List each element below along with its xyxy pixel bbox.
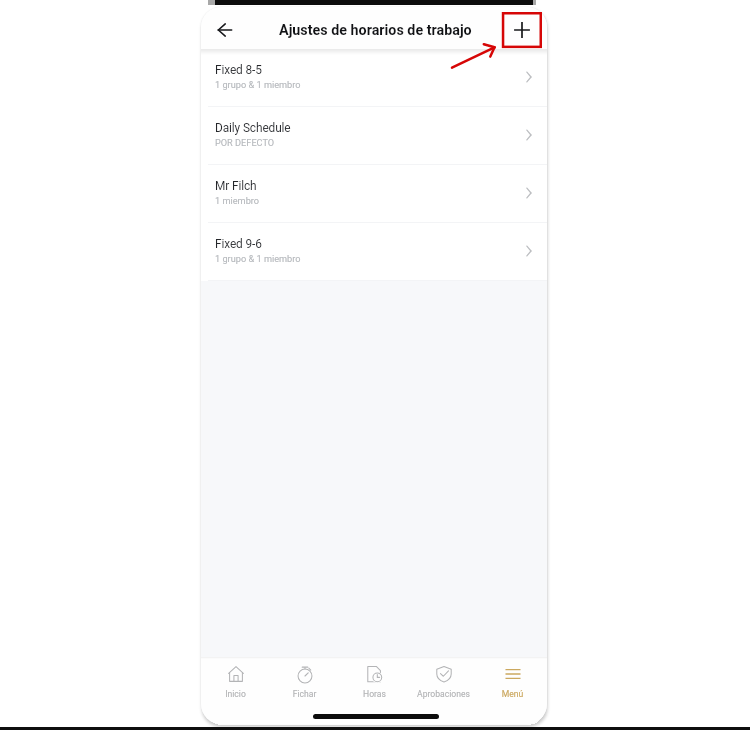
button[interactable]: Daily Schedule bbox=[201, 107, 547, 165]
staticText: 1 miembro bbox=[215, 195, 260, 206]
button[interactable]: Fixed 8-5 bbox=[201, 49, 547, 107]
button[interactable]: Mr Filch bbox=[201, 165, 547, 223]
staticText: 1 grupo & 1 miembro bbox=[215, 253, 301, 264]
staticText: Inicio bbox=[201, 689, 270, 699]
button[interactable]: Horas bbox=[340, 659, 409, 699]
staticText: Fichar bbox=[270, 689, 339, 699]
staticText: 1 grupo & 1 miembro bbox=[215, 79, 301, 90]
button[interactable]: Back bbox=[207, 12, 243, 48]
button[interactable]: Inicio bbox=[201, 659, 270, 699]
button[interactable]: Aprobaciones bbox=[409, 659, 478, 699]
button[interactable]: Fichar bbox=[270, 659, 339, 699]
staticText: Horas bbox=[340, 689, 409, 699]
button[interactable]: Add bbox=[504, 12, 540, 48]
staticText: Fixed 8-5 bbox=[215, 63, 262, 77]
staticText: Mr Filch bbox=[215, 179, 257, 193]
staticText: POR DEFECTO bbox=[215, 137, 275, 148]
button[interactable]: Menú bbox=[478, 659, 547, 699]
staticText: Daily Schedule bbox=[215, 121, 291, 135]
staticText: Menú bbox=[478, 689, 547, 699]
staticText: Fixed 9-6 bbox=[215, 237, 262, 251]
button[interactable]: Fixed 9-6 bbox=[201, 223, 547, 281]
staticText: Aprobaciones bbox=[409, 689, 478, 699]
staticText: Ajustes de horarios de trabajo bbox=[279, 22, 472, 39]
